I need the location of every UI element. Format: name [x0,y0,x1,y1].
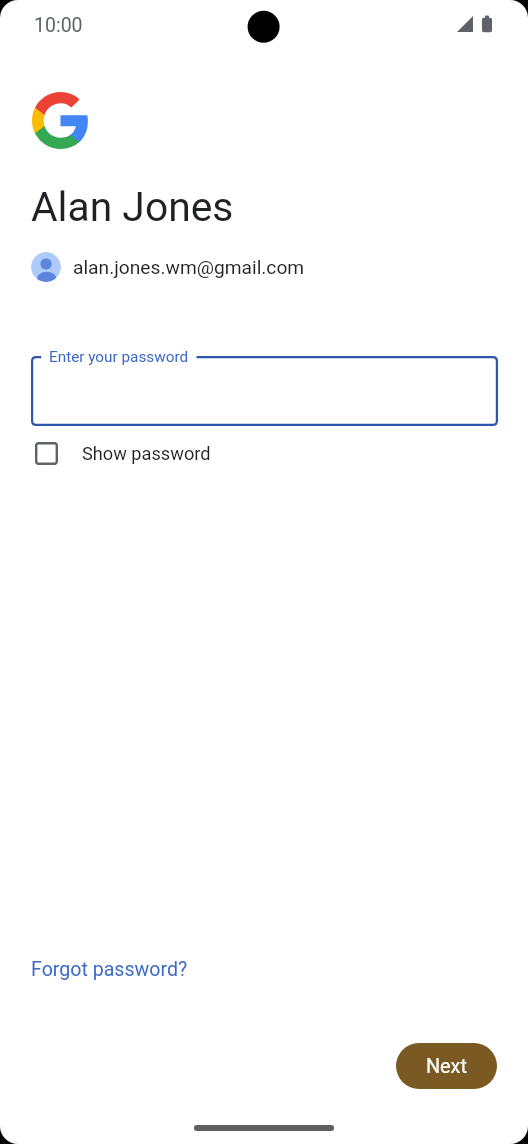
staticText: Enter your password [49,348,189,366]
staticText: alan.jones.wm@gmail.com [73,256,305,279]
other: Account [31,252,61,282]
staticText: Forgot password? [31,958,188,981]
other: Google [32,92,89,149]
button[interactable]: Show password [33,440,211,467]
button[interactable]: Account [31,252,305,282]
staticText: 10:00 [34,14,83,37]
staticText: Next [426,1055,467,1078]
staticText: Alan Jones [31,183,234,231]
button[interactable]: Next [396,1043,497,1089]
staticText: Show password [82,443,211,464]
button[interactable]: Enter your password [31,356,498,426]
button[interactable]: Forgot password? [21,950,198,989]
